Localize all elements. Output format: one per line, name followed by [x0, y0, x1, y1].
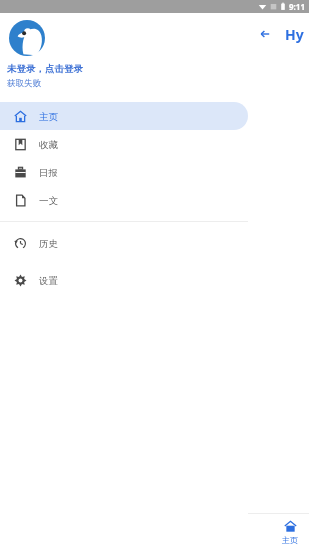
staticText: 设置 [39, 275, 58, 287]
staticText: 主页 [282, 535, 298, 545]
button[interactable]: 设置 [0, 266, 248, 294]
button[interactable]: 一文 [0, 186, 248, 214]
staticText: 收藏 [39, 139, 58, 151]
button[interactable]: 主页 [0, 102, 248, 130]
staticText: 历史 [39, 238, 58, 250]
button[interactable]: 未登录，点击登录 [0, 63, 248, 89]
staticText: 日报 [39, 167, 58, 179]
button[interactable]: 历史 [0, 229, 248, 257]
staticText: Hyd [285, 25, 309, 44]
button[interactable]: Back [255, 24, 275, 44]
button[interactable]: 收藏 [0, 130, 248, 158]
staticText: 一文 [39, 195, 58, 207]
staticText: 获取失败 [7, 78, 41, 89]
button[interactable]: 主页 [282, 520, 298, 545]
staticText: 未登录，点击登录 [7, 63, 83, 75]
button[interactable]: 日报 [0, 158, 248, 186]
staticText: 9:11 [289, 1, 305, 12]
staticText: 主页 [39, 111, 58, 123]
